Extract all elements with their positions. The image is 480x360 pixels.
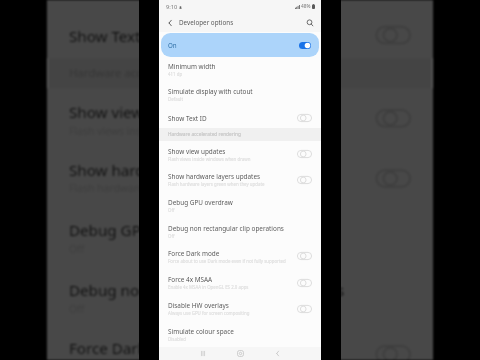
staticText: Developer options: [179, 18, 234, 27]
button[interactable]: Developer options on: [296, 39, 314, 52]
staticText: Force Dark mode: [168, 249, 220, 258]
button[interactable]: Minimum width: [159, 57, 321, 81]
staticText: Show view updates: [168, 147, 226, 156]
staticText: Flash hardware layers green when they up…: [69, 181, 299, 195]
staticText: Debug non rectangular clip operations: [69, 280, 344, 301]
button[interactable]: Disable HW overlays: [159, 296, 321, 321]
button[interactable]: Debug non rectangular clip operations: [159, 219, 321, 243]
staticText: Force about to use Dark mode even if not…: [69, 359, 349, 360]
button[interactable]: Debug GPU overdraw: [159, 192, 321, 219]
staticText: Flash views inside windows when drawn: [69, 123, 266, 137]
staticText: Simulate colour space: [168, 327, 234, 336]
button[interactable]: Show view updates: [159, 141, 321, 167]
button[interactable]: Recent apps: [196, 347, 209, 360]
button[interactable]: Show hardware layers updates: [47, 148, 432, 206]
staticText: Force about to use Dark mode even if not…: [168, 258, 286, 264]
staticText: Show hardware layers updates: [168, 172, 261, 181]
button[interactable]: Force Dark mode: [159, 243, 321, 269]
staticText: Always use GPU for screen compositing: [168, 310, 250, 316]
staticText: Show view updates: [69, 102, 207, 123]
staticText: Debug GPU overdraw: [168, 198, 233, 207]
button[interactable]: Simulate display with cutout: [47, 0, 432, 12]
staticText: Enable 4x MSAA in OpenGL ES 2.0 apps: [168, 284, 249, 290]
staticText: Hardware accelerated rendering: [168, 131, 241, 138]
button[interactable]: Show view updates: [47, 88, 432, 148]
button[interactable]: On: [161, 33, 319, 57]
staticText: Hardware accelerated rendering: [69, 65, 242, 81]
staticText: Off: [168, 207, 175, 213]
staticText: Show Text ID: [69, 26, 162, 47]
staticText: 48%: [301, 3, 311, 10]
button[interactable]: Back: [271, 347, 284, 360]
staticText: On: [168, 41, 177, 49]
staticText: 411 dp: [168, 71, 183, 77]
staticText: Disable HW overlays: [168, 301, 229, 310]
staticText: Debug GPU overdraw: [69, 220, 223, 241]
staticText: Debug non rectangular clip operations: [168, 224, 284, 233]
staticText: Force Dark mode: [69, 338, 192, 359]
staticText: Simulate display with cutout: [168, 87, 253, 96]
button[interactable]: Force 4x MSAA: [159, 269, 321, 296]
staticText: Flash hardware layers green when they up…: [168, 181, 265, 187]
staticText: Off: [168, 233, 175, 239]
button[interactable]: Show Text ID: [47, 12, 432, 58]
staticText: Force 4x MSAA: [168, 275, 213, 284]
button[interactable]: Search: [303, 16, 316, 29]
staticText: Default: [168, 96, 184, 102]
button[interactable]: Simulate colour space: [159, 321, 321, 347]
button[interactable]: Navigate up: [163, 16, 176, 29]
button[interactable]: Debug non rectangular clip operations: [47, 269, 432, 324]
button[interactable]: Force Dark mode: [47, 324, 432, 360]
button[interactable]: Show Text ID: [159, 108, 321, 128]
button[interactable]: Show hardware layers updates: [159, 167, 321, 192]
button[interactable]: Home: [234, 347, 247, 360]
staticText: Disabled: [168, 336, 186, 342]
staticText: 9:10: [166, 3, 178, 11]
staticText: Show hardware layers updates: [69, 160, 290, 181]
staticText: Flash views inside windows when drawn: [168, 156, 251, 162]
staticText: Show Text ID: [168, 114, 207, 123]
button[interactable]: Debug GPU overdraw: [47, 206, 432, 269]
staticText: Minimum width: [168, 62, 216, 71]
button[interactable]: Simulate display with cutout: [159, 81, 321, 108]
